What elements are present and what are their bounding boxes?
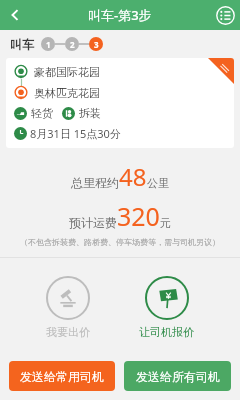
- staticText: 让司机报价: [139, 325, 194, 339]
- staticText: 2: [70, 39, 75, 50]
- staticText: 总里程约: [71, 175, 119, 190]
- staticText: 发送给所有司机: [136, 369, 220, 384]
- staticText: 豪都国际花园: [34, 65, 100, 79]
- button[interactable]: 1: [41, 37, 55, 51]
- button[interactable]: 发送给常用司机: [9, 361, 115, 391]
- staticText: 奥林匹克花园: [34, 86, 100, 100]
- staticText: 发送给常用司机: [20, 369, 104, 384]
- button[interactable]: Order list: [210, 0, 240, 30]
- staticText: （不包含拆装费、路桥费、停车场费等，需与司机另议）: [0, 237, 240, 247]
- staticText: 我要出价: [46, 325, 90, 339]
- button[interactable]: Back: [0, 0, 30, 30]
- staticText: 320: [117, 199, 160, 233]
- button[interactable]: 3: [89, 37, 103, 51]
- staticText: 叫车: [10, 37, 34, 52]
- button[interactable]: 让司机报价: [135, 272, 198, 343]
- staticText: 轻货: [31, 106, 53, 120]
- button[interactable]: 豪都国际花园: [6, 58, 234, 148]
- staticText: 48: [119, 160, 147, 193]
- button[interactable]: 发送给所有司机: [124, 361, 231, 391]
- staticText: 8月31日 15点30分: [30, 126, 121, 141]
- staticText: 3: [94, 39, 99, 50]
- staticText: 预计运费: [69, 215, 117, 230]
- staticText: 公里: [147, 176, 169, 190]
- button[interactable]: 2: [65, 37, 79, 51]
- staticText: 拆装: [79, 106, 101, 120]
- button[interactable]: 我要出价: [42, 272, 94, 343]
- staticText: 1: [46, 39, 51, 50]
- staticText: 叫车-第3步: [88, 6, 152, 24]
- staticText: 元: [160, 216, 171, 230]
